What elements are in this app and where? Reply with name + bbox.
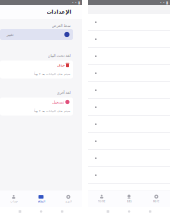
- button[interactable]: حذف: [0, 60, 73, 78]
- staticText: سيتم حذف البيانات بعد ٣٠ يوماً: [33, 109, 69, 112]
- staticText: البطاقة: [37, 200, 45, 203]
- button[interactable]: [88, 65, 170, 82]
- staticText: • • ▮: [72, 0, 80, 5]
- staticText: حساب: [10, 200, 18, 203]
- button[interactable]: المزيد: [55, 190, 82, 207]
- button[interactable]: Stats: [115, 190, 143, 207]
- button[interactable]: [88, 116, 170, 133]
- button[interactable]: [88, 133, 170, 150]
- button[interactable]: [88, 150, 170, 167]
- staticText: المزيد: [65, 200, 72, 203]
- staticText: لغة أخرى: [56, 90, 70, 95]
- button[interactable]: [88, 31, 170, 48]
- staticText: تغيير: [6, 32, 13, 37]
- button[interactable]: [88, 14, 170, 31]
- staticText: سيتم حذف البيانات بعد ٣٠ يوماً: [33, 72, 69, 75]
- button[interactable]: Home: [88, 190, 115, 207]
- button[interactable]: البطاقة: [27, 190, 55, 207]
- staticText: تسجيل: [52, 100, 64, 104]
- button[interactable]: تغيير: [0, 29, 73, 40]
- staticText: لغة تحت البيان: [47, 53, 70, 58]
- staticText: حذف: [56, 63, 64, 67]
- button[interactable]: [88, 82, 170, 99]
- button[interactable]: [88, 99, 170, 116]
- staticText: الإعدادات: [46, 9, 71, 15]
- button[interactable]: More: [143, 190, 170, 207]
- staticText: Home: [98, 199, 106, 203]
- staticText: نمط العرض: [51, 23, 70, 28]
- button[interactable]: تسجيل: [0, 97, 73, 115]
- button[interactable]: [88, 167, 170, 184]
- staticText: Stats: [126, 199, 131, 203]
- staticText: More: [153, 199, 160, 203]
- staticText: • • ▮: [160, 0, 168, 5]
- button[interactable]: حساب: [0, 190, 27, 207]
- button[interactable]: [88, 48, 170, 65]
